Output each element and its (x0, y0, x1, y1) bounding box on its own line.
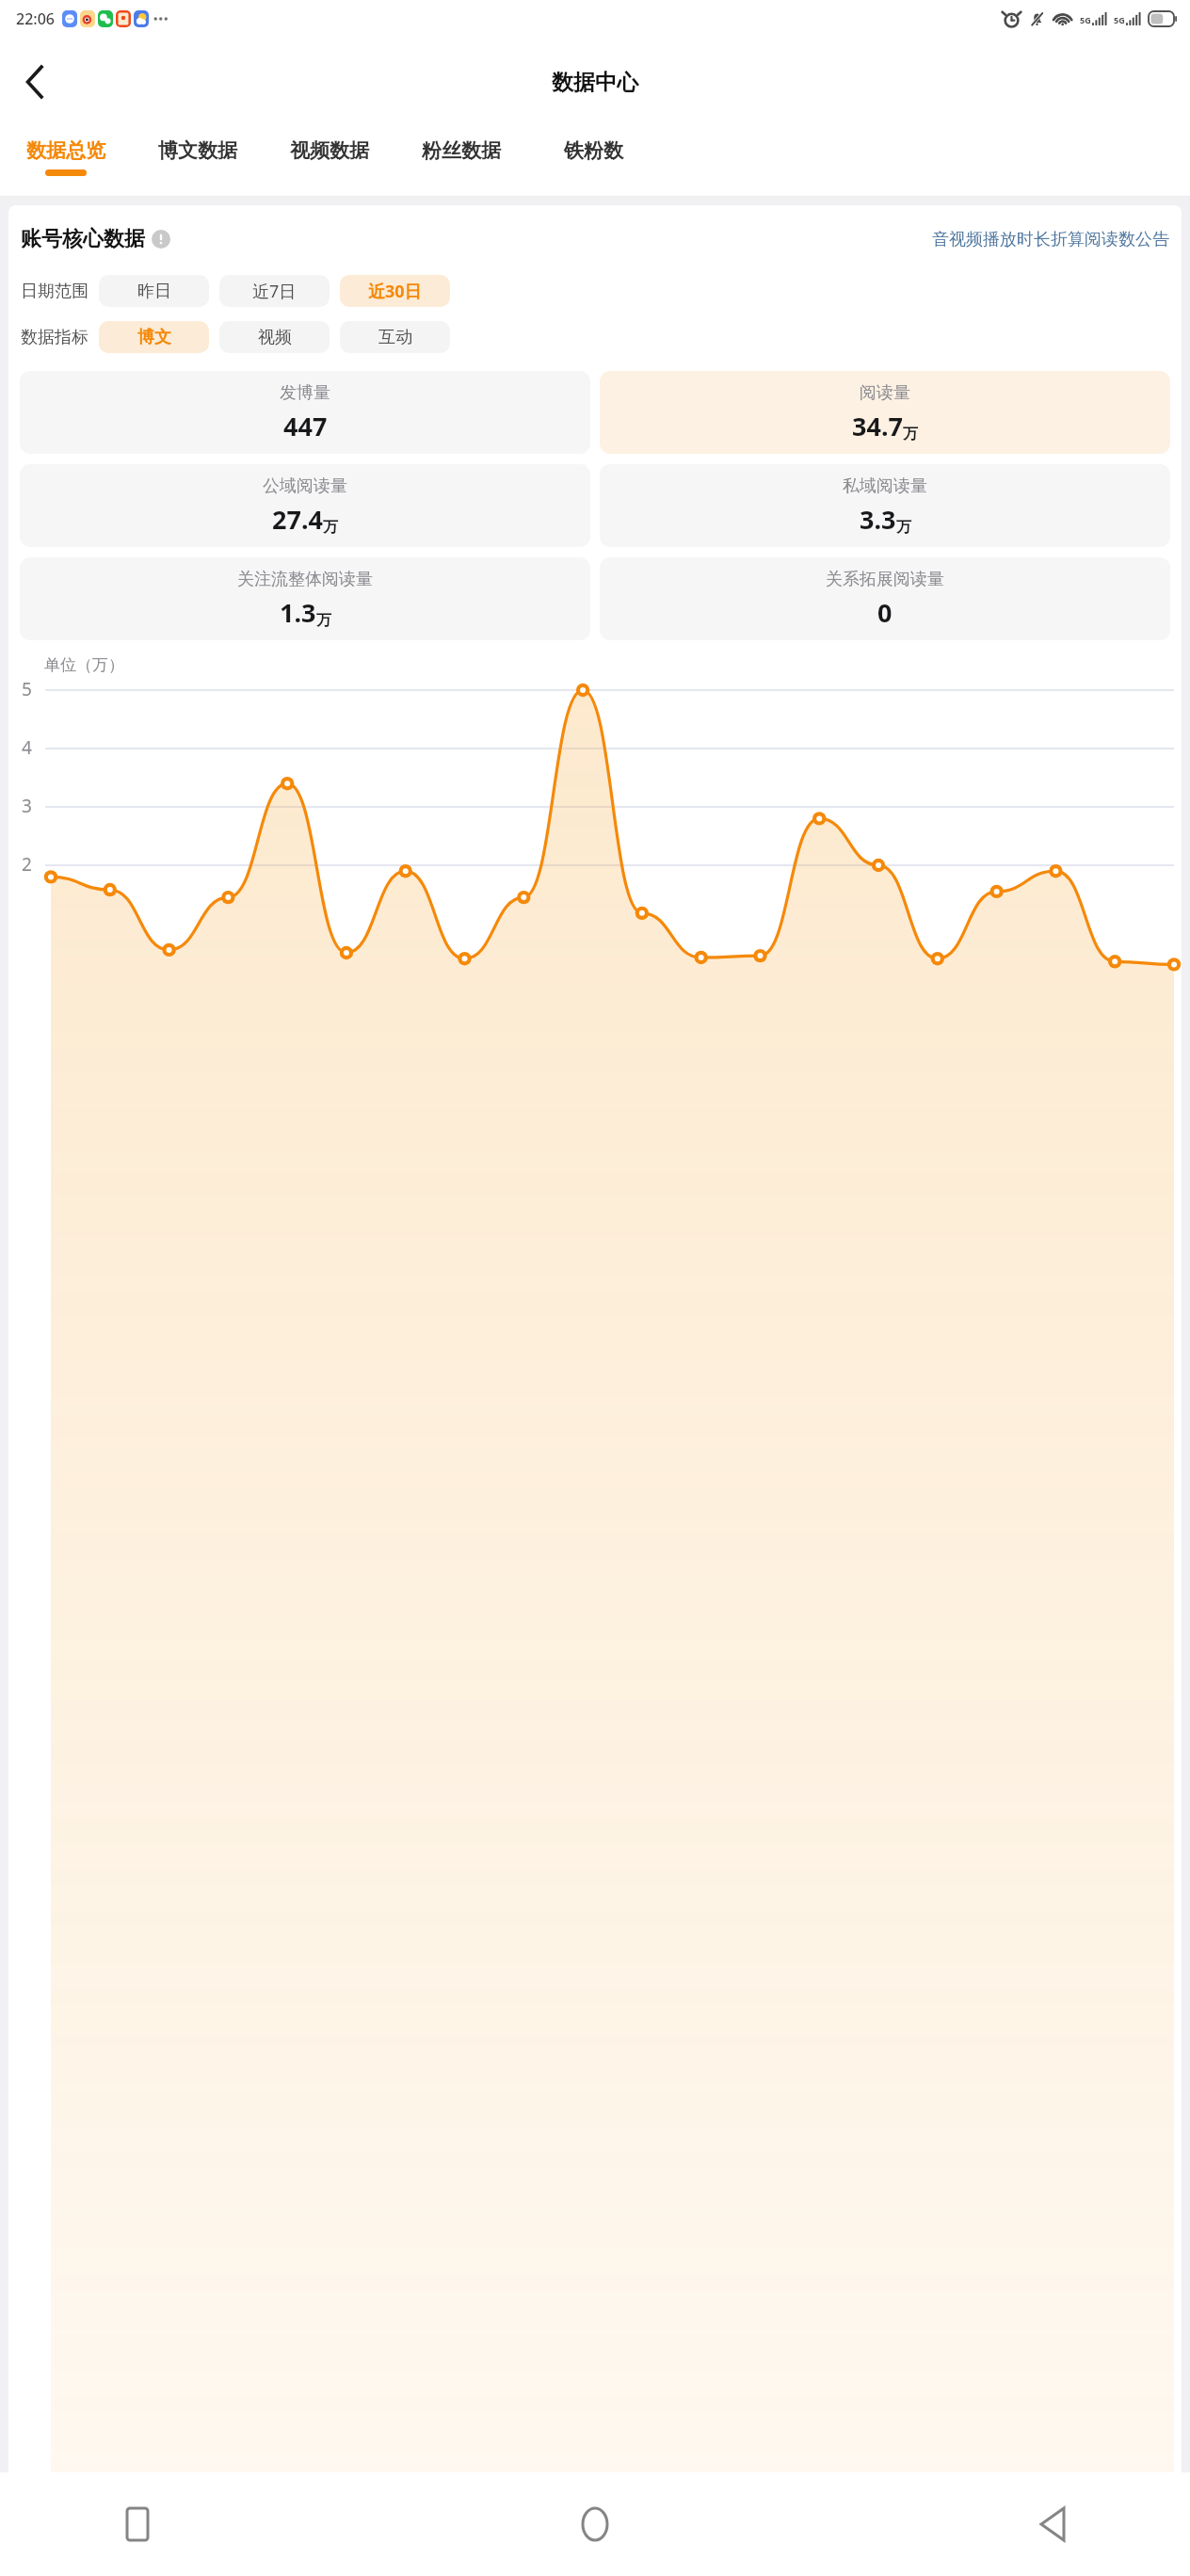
staticText: 5G (1080, 14, 1091, 25)
button[interactable]: 音视频播放时长折算阅读数公告 (932, 229, 1169, 250)
staticText: 昨日 (137, 281, 171, 302)
staticText: 关注流整体阅读量 (237, 569, 373, 590)
button[interactable]: 近7日 (219, 275, 330, 307)
staticText: 27.4 (272, 502, 323, 537)
button[interactable]: 铁粉数 (527, 126, 659, 197)
staticText: 博文 (137, 327, 171, 348)
button[interactable]: 私域阅读量 (600, 464, 1170, 547)
staticText: 关系拓展阅读量 (826, 569, 944, 590)
button[interactable]: Back (9, 56, 60, 107)
button[interactable]: Back (1019, 2490, 1086, 2558)
staticText: 视频数据 (290, 138, 369, 163)
staticText: 万 (323, 518, 338, 537)
staticText: 近30日 (368, 280, 422, 303)
button[interactable]: 博文数据 (132, 126, 264, 197)
button[interactable]: 关系拓展阅读量 (600, 557, 1170, 640)
button[interactable]: Recents (104, 2490, 171, 2558)
staticText: 数据指标 (21, 327, 88, 348)
button[interactable]: 互动 (340, 321, 450, 353)
staticText: 账号核心数据 (21, 226, 145, 252)
staticText: 单位（万） (44, 655, 124, 675)
button[interactable]: 视频 (219, 321, 330, 353)
staticText: 万 (903, 425, 918, 443)
staticText: 发博量 (280, 382, 330, 404)
staticText: 万 (316, 611, 331, 630)
staticText: 公域阅读量 (263, 475, 347, 497)
button[interactable]: 博文 (99, 321, 209, 353)
staticText: 铁粉数 (564, 138, 623, 163)
staticText: 0 (877, 595, 892, 630)
staticText: 1.3 (280, 595, 316, 630)
staticText: 4 (22, 735, 32, 760)
staticText: 阅读量 (860, 382, 910, 404)
staticText: 互动 (378, 327, 412, 348)
staticText: 日期范围 (21, 281, 88, 302)
button[interactable]: Info (152, 230, 170, 249)
button[interactable]: 粉丝数据 (395, 126, 527, 197)
staticText: 5G (1114, 14, 1125, 25)
staticText: 音视频播放时长折算阅读数公告 (932, 229, 1169, 250)
staticText: 近7日 (252, 280, 297, 303)
staticText: 数据总览 (26, 138, 105, 163)
button[interactable]: 近30日 (340, 275, 450, 307)
button[interactable]: Home (561, 2490, 629, 2558)
button[interactable]: 数据总览 (0, 126, 132, 197)
button[interactable]: 视频数据 (264, 126, 395, 197)
staticText: 私域阅读量 (843, 475, 927, 497)
staticText: 视频 (258, 327, 292, 348)
button[interactable]: 公域阅读量 (20, 464, 590, 547)
button[interactable]: 阅读量 (600, 371, 1170, 454)
staticText: 5 (22, 677, 32, 701)
staticText: 447 (283, 409, 328, 443)
staticText: 3 (22, 794, 32, 818)
button[interactable]: 发博量 (20, 371, 590, 454)
staticText: 数据中心 (552, 69, 638, 96)
button[interactable]: 昨日 (99, 275, 209, 307)
staticText: 万 (896, 518, 911, 537)
staticText: 34.7 (852, 409, 903, 443)
staticText: 3.3 (860, 502, 896, 537)
staticText: 粉丝数据 (422, 138, 501, 163)
staticText: 2 (22, 852, 32, 877)
staticText: 博文数据 (158, 138, 237, 163)
staticText: 22:06 (16, 8, 55, 29)
button[interactable]: 关注流整体阅读量 (20, 557, 590, 640)
